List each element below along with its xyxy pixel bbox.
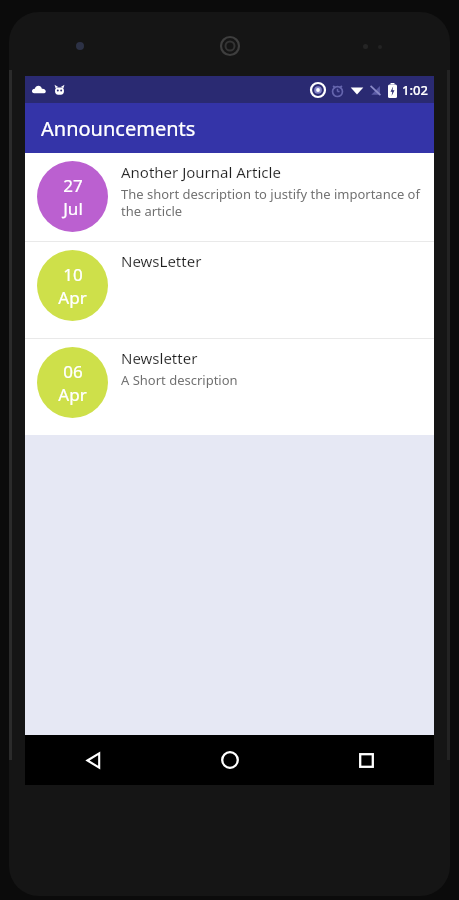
staticText: Newsletter	[121, 348, 198, 368]
button[interactable]: Home	[162, 735, 298, 785]
staticText: Apr	[58, 383, 87, 406]
button[interactable]: Recent apps	[298, 735, 434, 785]
button[interactable]: 10	[25, 242, 434, 338]
staticText: Another Journal Article	[121, 162, 281, 182]
staticText: 27	[63, 174, 83, 197]
staticText: 10	[63, 263, 83, 286]
staticText: The short description to justify the imp…	[121, 185, 422, 220]
button[interactable]: Back	[25, 735, 162, 785]
staticText: 1:02	[402, 81, 428, 99]
staticText: Announcements	[41, 115, 196, 142]
button[interactable]: 06	[25, 339, 434, 435]
button[interactable]: 27	[25, 153, 434, 241]
staticText: 06	[63, 360, 83, 383]
staticText: NewsLetter	[121, 251, 202, 271]
staticText: A Short description	[121, 371, 238, 389]
staticText: Apr	[58, 286, 87, 309]
staticText: Jul	[63, 197, 83, 220]
